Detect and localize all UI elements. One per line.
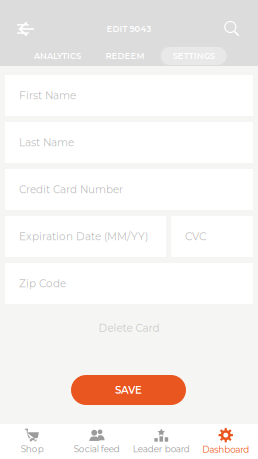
staticText: Leader board	[133, 444, 190, 454]
button[interactable]: CVC	[171, 216, 253, 257]
button[interactable]: Social feed	[64, 429, 129, 454]
staticText: Credit Card Number	[19, 183, 123, 196]
staticText: CVC	[185, 230, 206, 243]
button[interactable]: SETTINGS	[161, 47, 227, 65]
staticText: REDEEM	[105, 51, 144, 61]
staticText: Dashboard	[202, 444, 249, 455]
staticText: Last Name	[19, 136, 74, 149]
staticText: First Name	[19, 89, 76, 102]
staticText: Expiration Date (MM/YY)	[19, 230, 148, 243]
button[interactable]: Back	[6, 16, 46, 42]
button[interactable]: Zip Code	[5, 263, 253, 304]
button[interactable]: Delete Card	[0, 315, 258, 341]
staticText: Social feed	[74, 444, 120, 454]
button[interactable]: Last Name	[5, 122, 253, 163]
button[interactable]: Credit Card Number	[5, 169, 253, 210]
staticText: Zip Code	[19, 277, 66, 290]
staticText: ANALYTICS	[34, 51, 81, 61]
button[interactable]: SAVE	[71, 375, 186, 405]
button[interactable]: First Name	[5, 75, 253, 116]
button[interactable]: ANALYTICS	[22, 47, 91, 65]
staticText: EDIT 9043	[106, 24, 151, 34]
staticText: SAVE	[115, 384, 142, 396]
button[interactable]: Search	[212, 16, 252, 42]
button[interactable]: Leader board	[129, 429, 193, 454]
button[interactable]: Shop	[0, 429, 64, 454]
staticText: Shop	[21, 444, 44, 454]
staticText: SETTINGS	[173, 51, 215, 61]
button[interactable]: Expiration Date (MM/YY)	[5, 216, 166, 257]
button[interactable]: REDEEM	[93, 47, 156, 65]
button[interactable]: Dashboard	[193, 428, 258, 455]
staticText: Delete Card	[98, 322, 159, 334]
